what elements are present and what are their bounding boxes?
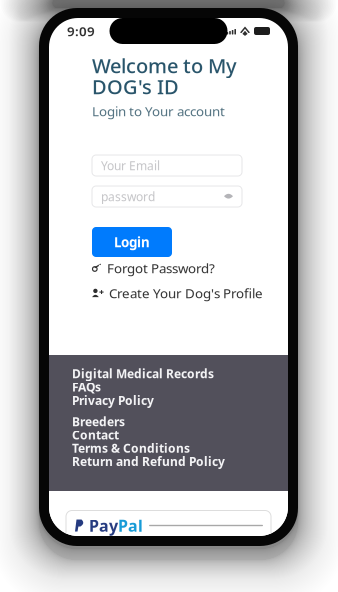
staticText: Pal: [118, 515, 143, 536]
button[interactable]: Login: [92, 227, 172, 257]
staticText: password: [101, 188, 155, 204]
button[interactable]: FAQs: [72, 380, 101, 394]
button[interactable]: PayPal checkout: [66, 510, 271, 540]
button[interactable]: Contact: [72, 428, 119, 441]
staticText: 9:09: [67, 22, 95, 40]
staticText: DOG's ID: [92, 73, 179, 100]
staticText: Return and Refund Policy: [72, 453, 225, 469]
button[interactable]: Digital Medical Records: [72, 367, 214, 380]
staticText: FAQs: [72, 379, 101, 395]
button[interactable]: Privacy Policy: [72, 394, 154, 407]
button[interactable]: Return and Refund Policy: [72, 455, 225, 468]
staticText: Privacy Policy: [72, 392, 154, 408]
staticText: Terms & Conditions: [72, 440, 190, 456]
button[interactable]: Breeders: [72, 415, 125, 428]
staticText: Contact: [72, 427, 119, 443]
staticText: Login: [114, 233, 150, 251]
staticText: Breeders: [72, 414, 125, 429]
button[interactable]: Create Your Dog's Profile: [92, 286, 263, 300]
button[interactable]: Forgot Password?: [92, 261, 215, 275]
staticText: Welcome to My: [92, 52, 237, 79]
button[interactable]: Terms & Conditions: [72, 441, 190, 455]
staticText: Pay: [89, 515, 118, 536]
staticText: Your Email: [101, 157, 160, 173]
staticText: Forgot Password?: [107, 259, 215, 277]
staticText: Digital Medical Records: [72, 366, 214, 382]
staticText: Create Your Dog's Profile: [109, 284, 263, 302]
staticText: Login to Your account: [92, 102, 225, 120]
